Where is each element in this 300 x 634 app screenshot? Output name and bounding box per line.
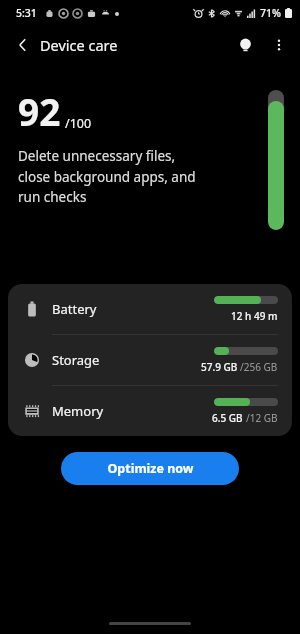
button[interactable]: More options: [262, 28, 296, 62]
staticText: Delete unnecessary files, close backgrou…: [18, 147, 196, 206]
button[interactable]: Memory: [8, 386, 292, 436]
button[interactable]: Battery: [8, 284, 292, 334]
staticText: /256 GB: [240, 360, 278, 374]
staticText: Optimize now: [107, 460, 194, 477]
staticText: Memory: [52, 402, 212, 420]
staticText: 92: [18, 86, 61, 136]
button[interactable]: Back: [6, 28, 40, 62]
staticText: /12 GB: [246, 411, 278, 425]
staticText: Battery: [52, 300, 214, 318]
button[interactable]: Storage: [8, 335, 292, 385]
button[interactable]: Optimize now: [61, 452, 239, 485]
staticText: 71%: [260, 6, 281, 20]
staticText: Device care: [40, 35, 118, 55]
staticText: /100: [65, 115, 92, 132]
staticText: 12 h 49 m: [231, 309, 278, 323]
staticText: Storage: [52, 351, 201, 369]
staticText: 5:31: [16, 6, 37, 20]
staticText: 57.9 GB: [201, 360, 240, 374]
staticText: 6.5 GB: [212, 411, 246, 425]
button[interactable]: Tips: [228, 28, 262, 62]
